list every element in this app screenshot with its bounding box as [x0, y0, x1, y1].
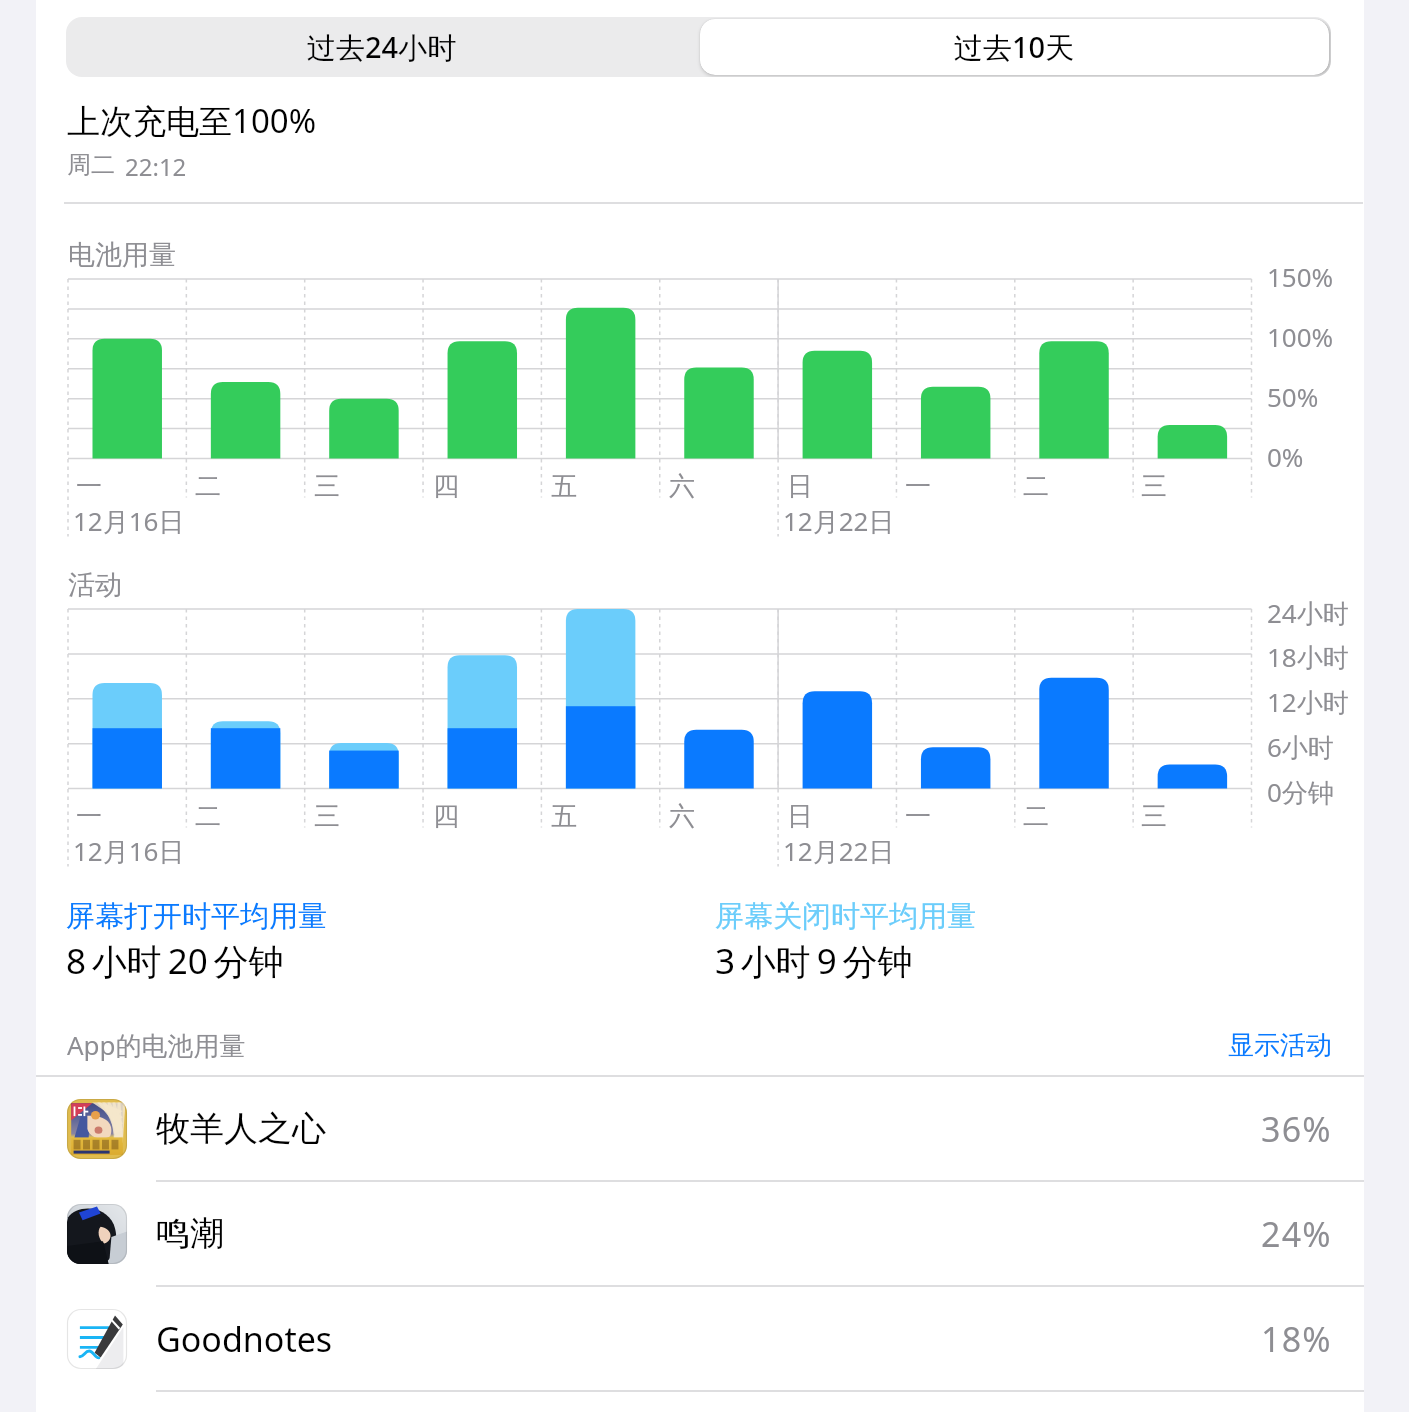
button[interactable]: 显示活动 — [1228, 1029, 1332, 1062]
staticText: 3 小时 9 分钟 — [715, 937, 913, 985]
staticText: 过去10天 — [954, 27, 1075, 67]
staticText: 四 — [433, 800, 459, 833]
button[interactable]: Goodnotes — [36, 1287, 1364, 1392]
staticText: 0分钟 — [1267, 774, 1334, 810]
staticText: 24% — [1261, 1211, 1332, 1257]
staticText: 日 — [787, 800, 813, 833]
staticText: 12月22日 — [783, 503, 895, 539]
staticText: 三 — [1141, 470, 1167, 503]
staticText: 二 — [195, 800, 221, 833]
staticText: 0% — [1267, 439, 1304, 474]
button[interactable]: 鸣潮 — [36, 1182, 1364, 1287]
staticText: 日 — [787, 470, 813, 503]
staticText: 活动 — [68, 568, 122, 602]
staticText: 12月22日 — [783, 833, 895, 869]
staticText: 一 — [905, 800, 931, 833]
staticText: 18小时 — [1267, 639, 1349, 675]
staticText: 150% — [1267, 259, 1334, 294]
staticText: 周二 — [67, 150, 115, 180]
staticText: 屏幕打开时平均用量 — [66, 898, 327, 935]
staticText: Goodnotes — [156, 1316, 333, 1362]
staticText: 一 — [76, 470, 102, 503]
staticText: 二 — [1023, 800, 1049, 833]
staticText: 六 — [669, 800, 695, 833]
staticText: 8 小时 20 分钟 — [66, 937, 284, 985]
staticText: 18% — [1261, 1316, 1332, 1362]
staticText: 三 — [1141, 800, 1167, 833]
staticText: 五 — [551, 800, 577, 833]
staticText: 六 — [669, 470, 695, 503]
button[interactable]: 过去10天 — [700, 19, 1329, 75]
button[interactable]: 牧羊人之心 — [36, 1077, 1364, 1182]
staticText: 24小时 — [1267, 595, 1349, 631]
staticText: 屏幕关闭时平均用量 — [715, 898, 976, 935]
staticText: 三 — [314, 800, 340, 833]
staticText: 50% — [1267, 379, 1319, 414]
staticText: 鸣潮 — [156, 1212, 224, 1255]
staticText: 四 — [433, 470, 459, 503]
staticText: 二 — [195, 470, 221, 503]
staticText: 上次充电至100% — [67, 98, 317, 143]
staticText: 22:12 — [125, 150, 187, 183]
staticText: 五 — [551, 470, 577, 503]
staticText: 12月16日 — [73, 503, 185, 539]
staticText: 一 — [905, 470, 931, 503]
staticText: 6小时 — [1267, 729, 1334, 765]
staticText: App的电池用量 — [67, 1027, 246, 1063]
staticText: 100% — [1267, 319, 1334, 354]
staticText: 36% — [1261, 1106, 1332, 1152]
staticText: 三 — [314, 470, 340, 503]
staticText: 12小时 — [1267, 684, 1349, 720]
staticText: 电池用量 — [68, 238, 176, 272]
staticText: 过去24小时 — [307, 27, 457, 67]
staticText: 显示活动 — [1228, 1029, 1332, 1062]
staticText: 12月16日 — [73, 833, 185, 869]
staticText: 牧羊人之心 — [156, 1107, 326, 1150]
staticText: 二 — [1023, 470, 1049, 503]
button[interactable]: 过去24小时 — [66, 17, 698, 77]
staticText: 一 — [76, 800, 102, 833]
